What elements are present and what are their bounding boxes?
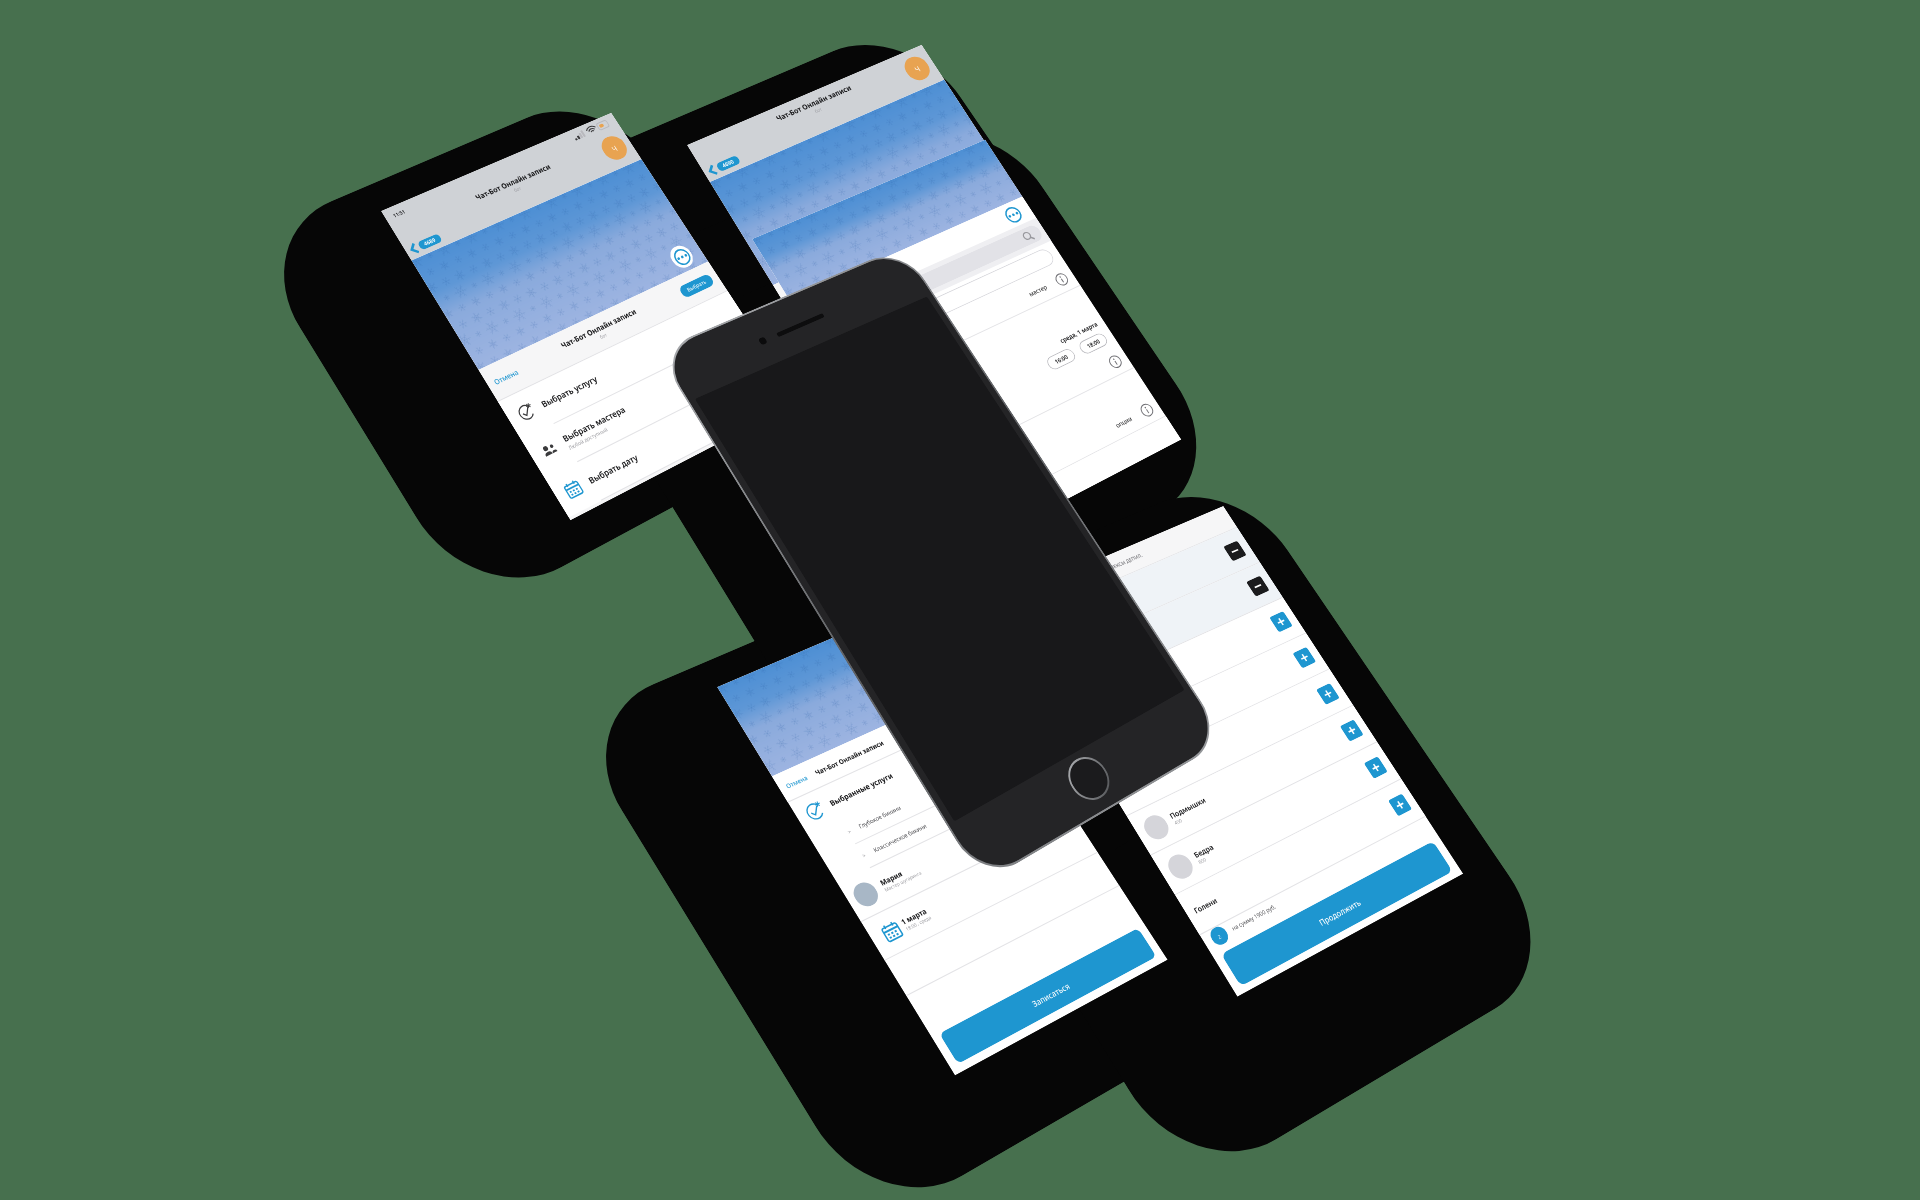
- staticText: среда, 1 марта: [1058, 320, 1099, 345]
- staticText: Чат-Бот Онлайн записи: [802, 273, 876, 312]
- button[interactable]: Add: [1269, 611, 1293, 633]
- button[interactable]: More actions: [666, 242, 697, 271]
- button[interactable]: Записаться: [939, 928, 1157, 1064]
- button[interactable]: Add: [1292, 647, 1316, 669]
- staticText: Записаться: [1030, 980, 1072, 1009]
- staticText: Глубокое бикини: [857, 803, 903, 830]
- staticText: Мария: [878, 869, 904, 888]
- staticText: Ч: [609, 143, 619, 154]
- staticText: Выбрать: [984, 192, 1007, 208]
- button[interactable]: Home: [1063, 752, 1115, 805]
- staticText: Голени: [1192, 895, 1219, 915]
- staticText: 18:00 , среда: [904, 914, 933, 933]
- staticText: Чат-Бот Онлайн записи: [774, 83, 853, 124]
- button[interactable]: Выбрать дату: [839, 276, 1096, 431]
- button[interactable]: Back: [407, 231, 444, 256]
- button[interactable]: Add: [1316, 683, 1340, 705]
- button[interactable]: Выбрать дату: [545, 363, 798, 517]
- button[interactable]: Remove: [1040, 565, 1276, 697]
- button[interactable]: Remove: [1017, 530, 1253, 659]
- staticText: 2: [1216, 932, 1223, 940]
- button[interactable]: Add: [1364, 756, 1388, 779]
- button[interactable]: опции: [925, 395, 1160, 532]
- staticText: 18:00: [1085, 337, 1102, 350]
- button[interactable]: Бедра: [1158, 745, 1394, 891]
- button[interactable]: Profile: [900, 53, 934, 84]
- staticText: Чат-Бот Онлайн записи: [559, 307, 639, 351]
- staticText: Бедра: [1192, 842, 1216, 860]
- staticText: Выбранные услуги: [828, 771, 895, 809]
- button[interactable]: 18:00: [1085, 337, 1102, 350]
- staticText: 1 марта: [899, 906, 928, 927]
- button[interactable]: Выбрать мастера: [521, 327, 774, 478]
- button[interactable]: Profile: [597, 133, 632, 163]
- staticText: Выбрать мастера: [560, 404, 628, 445]
- button[interactable]: Отмена: [492, 367, 521, 387]
- button[interactable]: Голени: [1182, 783, 1419, 931]
- button[interactable]: Выбрать услугу: [498, 291, 750, 439]
- staticText: Выбрать: [685, 278, 708, 293]
- button[interactable]: Back: [705, 153, 742, 178]
- staticText: 16:00: [1053, 352, 1070, 366]
- button[interactable]: More actions: [965, 157, 996, 185]
- staticText: мастер: [1027, 283, 1049, 298]
- staticText: 4689: [422, 236, 438, 248]
- button[interactable]: Add: [1340, 719, 1364, 742]
- button[interactable]: More actions: [997, 201, 1028, 228]
- button[interactable]: мастер: [839, 265, 1074, 392]
- staticText: Чат-Бот Онлайн записи: [473, 162, 553, 203]
- staticText: Чат-Бот Онлайн записи: [813, 738, 885, 777]
- staticText: Выбрать дату: [586, 452, 640, 487]
- button[interactable]: >: [855, 761, 1044, 867]
- staticText: Ч: [912, 64, 922, 74]
- staticText: Мастер шугаринга: [883, 869, 924, 894]
- button[interactable]: >: [841, 739, 1029, 843]
- button[interactable]: 1 марта: [868, 819, 1091, 956]
- button[interactable]: Мария: [844, 783, 1068, 918]
- staticText: Классическое бикини: [871, 821, 929, 854]
- staticText: 800: [1197, 856, 1208, 866]
- button[interactable]: Отмена: [786, 282, 815, 302]
- staticText: бот: [513, 185, 523, 194]
- button[interactable]: [893, 347, 1128, 480]
- button[interactable]: 16:00: [1053, 352, 1070, 366]
- staticText: Чат-Бот Онлайн записи: [856, 222, 935, 265]
- staticText: опции: [1114, 414, 1134, 430]
- staticText: бот: [598, 332, 609, 341]
- staticText: Выбрать услугу: [833, 289, 895, 325]
- staticText: Подмышки: [1168, 795, 1208, 821]
- staticText: 4690: [721, 158, 736, 169]
- button[interactable]: Выбрать услугу: [792, 205, 1049, 354]
- button[interactable]: Add: [1110, 672, 1346, 812]
- button[interactable]: Remove: [1246, 575, 1270, 597]
- button[interactable]: Add: [1388, 793, 1412, 816]
- button[interactable]: бикини: [1063, 601, 1299, 735]
- button[interactable]: Remove: [1223, 540, 1247, 561]
- button[interactable]: Search: [810, 223, 1045, 341]
- staticText: >: [861, 851, 868, 860]
- staticText: 400: [1173, 817, 1184, 827]
- button[interactable]: Продолжить: [1221, 841, 1453, 986]
- staticText: бот: [895, 246, 906, 255]
- staticText: 11:51: [391, 208, 406, 218]
- staticText: на сумму 1900 руб.: [1230, 903, 1278, 932]
- staticText: Продолжить: [1317, 897, 1363, 928]
- button[interactable]: Выбрать: [685, 278, 708, 293]
- button[interactable]: Подмышки: [1134, 709, 1370, 851]
- button[interactable]: Выбрать мастера: [816, 241, 1072, 392]
- button[interactable]: Выбрать: [984, 192, 1007, 208]
- staticText: КОМПЛЕКСЫ ДЕПИЛ.: [1096, 551, 1143, 576]
- button[interactable]: Выбранные услуги: [788, 704, 1022, 836]
- staticText: Выбрать услугу: [539, 373, 600, 410]
- button[interactable]: Отмена: [784, 773, 810, 790]
- staticText: >: [846, 827, 853, 836]
- button[interactable]: Add: [1087, 636, 1323, 773]
- staticText: бот: [813, 106, 824, 115]
- staticText: Любой доступный: [567, 426, 609, 451]
